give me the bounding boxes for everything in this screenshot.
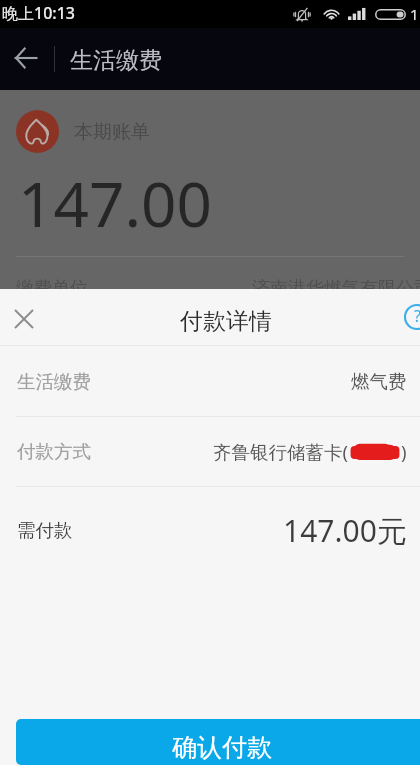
staticText: 付款详情 [180, 307, 272, 336]
button[interactable]: Help [402, 302, 420, 332]
button[interactable]: 生活缴费 [0, 346, 420, 416]
staticText: 付款方式 [17, 440, 91, 463]
staticText: 晚上10:13 [2, 2, 75, 24]
staticText: 缴费单位 [16, 277, 88, 300]
staticText: 燃气费 [351, 370, 407, 393]
staticText: 齐鲁银行储蓄卡( [213, 439, 349, 464]
staticText: ) [401, 439, 407, 464]
staticText: 济南港华燃气有限公司 [252, 277, 420, 300]
staticText: 本期账单 [74, 120, 150, 144]
button[interactable]: 付款方式 [0, 417, 420, 486]
staticText: 1 [410, 4, 419, 24]
button[interactable]: Close [5, 300, 43, 338]
staticText: ? [414, 305, 420, 327]
staticText: 确认付款 [172, 732, 272, 763]
button[interactable]: 确认付款 [16, 719, 420, 765]
staticText: 生活缴费 [70, 46, 162, 75]
button[interactable]: Back [4, 36, 48, 80]
staticText: 生活缴费 [17, 370, 91, 393]
staticText: 需付款 [17, 519, 73, 542]
staticText: 147.00元 [283, 510, 407, 551]
staticText: 147.00 [18, 161, 212, 245]
